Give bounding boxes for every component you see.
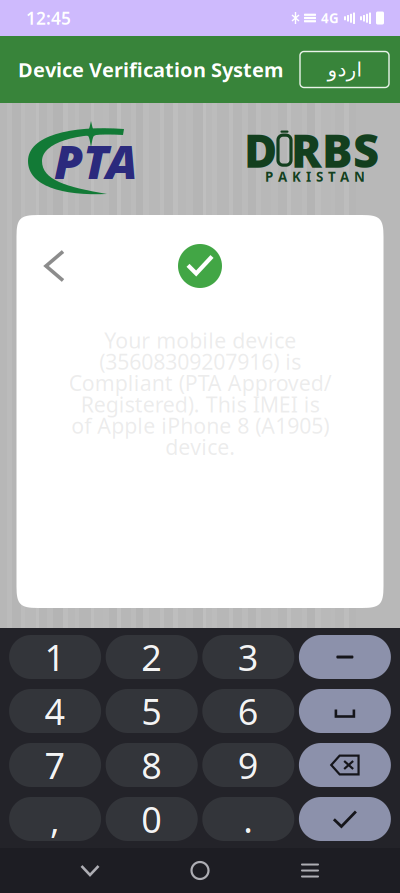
- staticText: D: [244, 120, 277, 180]
- staticText: 0: [141, 795, 162, 843]
- button[interactable]: Dash: [299, 635, 391, 679]
- button[interactable]: اردو: [300, 51, 389, 87]
- button[interactable]: 1: [9, 635, 101, 679]
- staticText: 2: [141, 633, 162, 681]
- staticText: 1: [45, 633, 66, 681]
- button[interactable]: 4: [9, 689, 101, 733]
- staticText: Your mobile device (35608309207916) is C…: [68, 326, 331, 461]
- button[interactable]: Back: [32, 244, 76, 288]
- staticText: 4G: [321, 9, 339, 27]
- button[interactable]: Home: [170, 848, 230, 893]
- staticText: Device Verification System: [18, 56, 284, 83]
- button[interactable]: Hide keyboard: [60, 848, 120, 893]
- button[interactable]: 9: [202, 743, 294, 787]
- button[interactable]: Backspace: [299, 743, 391, 787]
- button[interactable]: Recents: [280, 848, 340, 893]
- staticText: RBS: [291, 120, 379, 180]
- staticText: 5: [141, 687, 162, 735]
- button[interactable]: 8: [106, 743, 198, 787]
- button[interactable]: ,: [9, 797, 101, 841]
- button[interactable]: Enter: [299, 797, 391, 841]
- staticText: 6: [238, 687, 259, 735]
- staticText: 8: [141, 741, 162, 789]
- staticText: 9: [238, 741, 259, 789]
- staticText: اردو: [327, 58, 362, 81]
- staticText: .: [243, 795, 253, 843]
- button[interactable]: 0: [106, 797, 198, 841]
- button[interactable]: 6: [202, 689, 294, 733]
- button[interactable]: Space: [299, 689, 391, 733]
- staticText: ,: [50, 795, 60, 843]
- staticText: PAKISTAN: [265, 168, 365, 185]
- button[interactable]: 3: [202, 635, 294, 679]
- staticText: 3: [238, 633, 259, 681]
- staticText: PTA: [54, 130, 138, 192]
- button[interactable]: 5: [106, 689, 198, 733]
- button[interactable]: .: [202, 797, 294, 841]
- staticText: 7: [45, 741, 66, 789]
- button[interactable]: 7: [9, 743, 101, 787]
- button[interactable]: 2: [106, 635, 198, 679]
- staticText: 4: [45, 687, 66, 735]
- staticText: 12:45: [26, 6, 71, 29]
